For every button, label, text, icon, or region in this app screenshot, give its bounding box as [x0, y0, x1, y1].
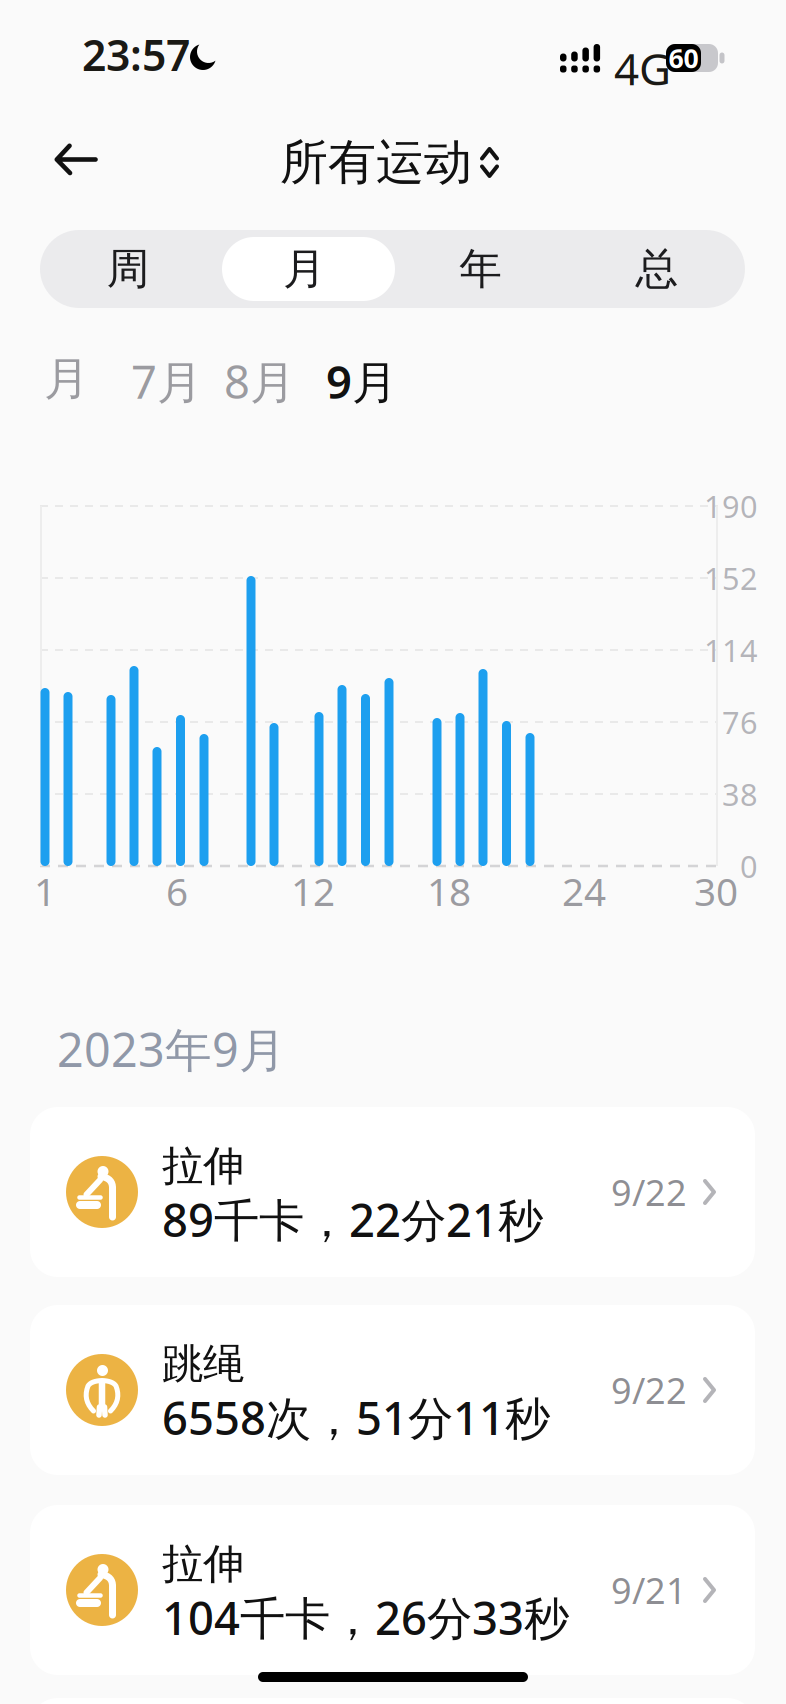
staticText: 月: [44, 351, 89, 407]
staticText: 76: [722, 702, 758, 742]
staticText: 89千卡，22分21秒: [162, 1189, 543, 1249]
staticText: 拉伸: [162, 1140, 244, 1191]
staticText: 跳绳: [162, 1338, 244, 1389]
button[interactable]: 年: [392, 230, 569, 308]
staticText: 9/21: [611, 1566, 687, 1614]
staticText: 月: [283, 243, 326, 295]
staticText: 7月: [131, 351, 202, 411]
staticText: 9/22: [611, 1366, 687, 1414]
staticText: 2023年9月: [57, 1018, 286, 1080]
staticText: 1: [34, 865, 56, 917]
staticText: 年: [459, 243, 502, 295]
staticText: 9月: [326, 351, 397, 411]
button[interactable]: [40, 132, 104, 187]
staticText: 18: [427, 865, 471, 917]
button[interactable]: 拉伸: [30, 1107, 755, 1277]
staticText: 30: [694, 865, 738, 917]
staticText: 152: [704, 558, 758, 598]
staticText: 周: [107, 243, 150, 295]
staticText: 所有运动: [280, 133, 472, 192]
staticText: 38: [722, 774, 758, 814]
button[interactable]: 所有运动: [280, 133, 499, 192]
button[interactable]: 7月: [131, 351, 202, 411]
staticText: 6558次，51分11秒: [162, 1387, 550, 1447]
staticText: 60: [668, 40, 698, 76]
staticText: 104千卡，26分33秒: [162, 1587, 569, 1647]
staticText: 总: [635, 243, 678, 295]
staticText: 12: [291, 865, 335, 917]
staticText: 拉伸: [162, 1538, 244, 1589]
staticText: 23:57: [82, 26, 190, 83]
staticText: 190: [704, 486, 758, 526]
staticText: 114: [704, 630, 758, 670]
staticText: 4G: [614, 39, 671, 97]
button[interactable]: 总: [569, 230, 745, 308]
button[interactable]: 拉伸: [30, 1505, 755, 1675]
button[interactable]: 月: [216, 230, 392, 308]
staticText: 9/22: [611, 1168, 687, 1216]
staticText: 24: [562, 865, 606, 917]
button[interactable]: 周: [40, 230, 216, 308]
button[interactable]: 9月: [326, 351, 397, 411]
button[interactable]: 月: [44, 351, 89, 407]
staticText: 0: [740, 846, 758, 886]
button[interactable]: 跳绳: [30, 1305, 755, 1475]
staticText: 8月: [224, 351, 295, 411]
staticText: 6: [166, 865, 188, 917]
button[interactable]: 8月: [224, 351, 295, 411]
